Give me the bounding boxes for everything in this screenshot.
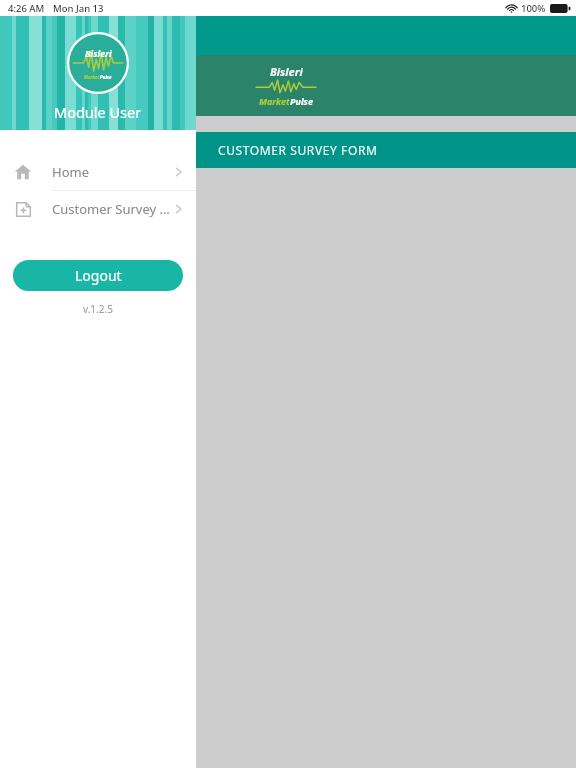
staticText: Bisleri <box>85 47 112 59</box>
staticText: Bisleri <box>270 64 303 79</box>
button[interactable]: Customer Survey … <box>0 191 196 227</box>
staticText: Module User <box>54 102 142 122</box>
staticText: Home <box>52 163 174 181</box>
staticText: Logout <box>75 266 122 285</box>
staticText: Market <box>84 74 100 80</box>
staticText: Market <box>259 95 290 107</box>
staticText: Pulse <box>290 95 313 107</box>
staticText: CUSTOMER SURVEY FORM <box>218 142 378 158</box>
button[interactable]: Logout <box>13 260 183 291</box>
button[interactable]: Home <box>0 154 196 190</box>
staticText: 4:26 AM <box>8 2 45 15</box>
staticText: 100% <box>521 2 546 15</box>
staticText: Pulse <box>100 74 112 80</box>
staticText: Customer Survey … <box>52 200 174 218</box>
staticText: v.1.2.5 <box>83 302 113 316</box>
staticText: Mon Jan 13 <box>53 2 104 15</box>
